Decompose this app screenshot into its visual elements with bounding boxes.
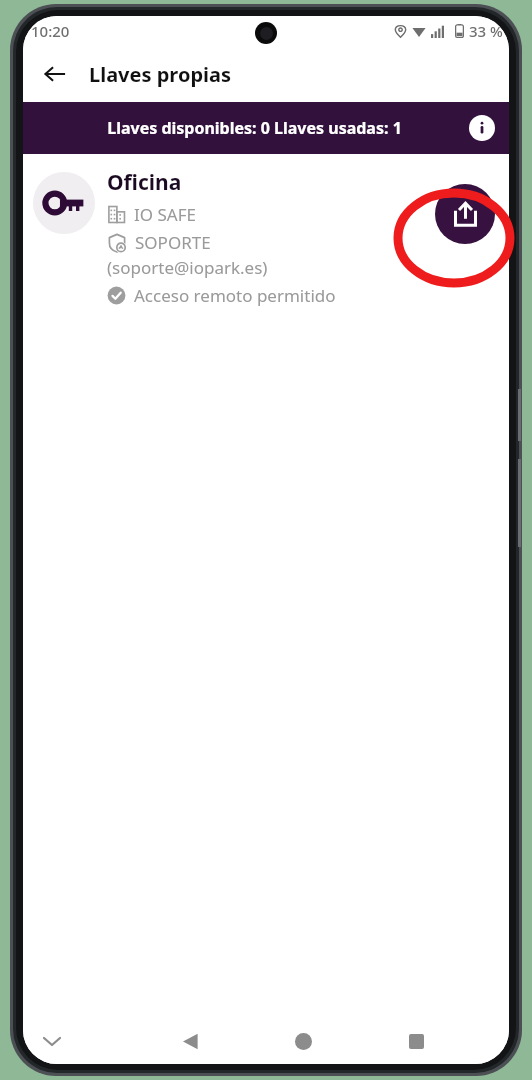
staticText: Acceso remoto permitido xyxy=(134,284,336,307)
staticText: Oficina xyxy=(107,168,182,197)
button[interactable]: Hide keyboard xyxy=(35,1024,69,1058)
staticText: Llaves disponibles: 0 Llaves usadas: 1 xyxy=(107,117,402,139)
staticText: 10:20 xyxy=(31,21,70,41)
button[interactable]: Oficina xyxy=(23,154,509,323)
button[interactable]: Share xyxy=(435,184,495,244)
button[interactable]: Llaves disponibles: 0 Llaves usadas: 1 xyxy=(23,102,509,154)
staticText: 33 % xyxy=(469,21,503,41)
button[interactable]: Back xyxy=(170,1021,210,1061)
staticText: SOPORTE xyxy=(135,231,211,254)
button[interactable]: Back xyxy=(33,52,77,96)
staticText: (soporte@iopark.es) xyxy=(107,256,268,279)
staticText: IO SAFE xyxy=(134,203,196,226)
staticText: Llaves propias xyxy=(89,61,232,88)
button[interactable]: Home xyxy=(283,1021,323,1061)
button[interactable]: Recent apps xyxy=(396,1021,436,1061)
button[interactable]: Information xyxy=(469,115,495,141)
